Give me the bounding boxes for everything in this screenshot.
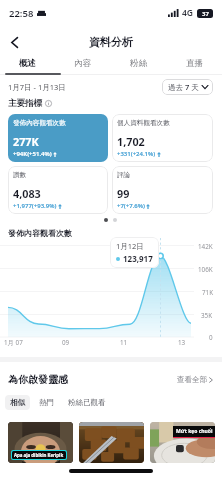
button[interactable] [79,422,144,463]
staticText: 發佈內容觀看次數 [13,119,66,127]
staticText: 35K [201,311,213,320]
staticText: 主要指標 [8,98,42,109]
staticText: +331(+24.1%) [117,150,156,158]
staticText: 1,702 [117,134,145,149]
staticText: 0 [209,333,213,342]
button[interactable]: 內容 [55,55,110,72]
staticText: Mứt kẹo chuối [176,428,213,435]
button[interactable]: 粉絲 [110,55,166,72]
staticText: 99 [117,186,130,201]
staticText: 4G [182,7,194,19]
button[interactable]: 直播 [166,55,222,72]
button[interactable]: 相似 [5,395,30,410]
button[interactable]: 發佈內容觀看次數 [8,114,108,162]
button[interactable]: 查看全部 [177,375,213,384]
staticText: 106K [198,265,213,274]
staticText: 37 [202,10,209,18]
staticText: 查看全部 [177,375,207,384]
staticText: 1月 07 [4,338,23,347]
staticText: 1月7日 - 1月13日 [8,82,66,92]
button[interactable]: 讚數 [8,166,108,214]
button[interactable]: 個人資料觀看次數 [112,114,213,162]
button[interactable]: Apa aja dibikin Keripik [8,422,73,463]
staticText: Apa aja dibikin Keripik [14,452,64,458]
button[interactable]: 粉絲已觀看 [63,395,111,410]
staticText: 評論 [117,171,131,179]
staticText: 粉絲已觀看 [68,398,106,407]
staticText: +94K(+51.4%) [13,150,52,158]
staticText: 讚數 [13,171,27,179]
staticText: 過去 7 天 [168,82,199,92]
button[interactable]: Mứt kẹo chuối [150,422,215,463]
button[interactable]: 評論 [112,166,213,214]
staticText: 09 [62,338,70,347]
staticText: 277K [13,134,39,149]
staticText: 直播 [186,58,203,69]
staticText: +7(+7.6%) [117,202,145,210]
staticText: 1月12日 [116,241,144,251]
staticText: 個人資料觀看次數 [117,119,170,127]
staticText: 123,917 [123,253,153,264]
staticText: 內容 [74,58,91,69]
staticText: 發佈內容觀看次數 [8,228,72,238]
staticText: 粉絲 [130,58,147,69]
staticText: 相似 [10,398,25,407]
staticText: 71K [202,288,214,297]
staticText: 13 [178,338,186,347]
staticText: 資料分析 [89,35,133,49]
staticText: +1,977(+93.9%) [13,202,57,210]
button[interactable]: 熱門 [34,395,59,410]
button[interactable]: Back [2,30,26,54]
staticText: 142K [198,242,213,251]
staticText: 22:58 [9,7,34,20]
button[interactable]: 過去 7 天 [162,79,213,95]
staticText: 4,083 [13,186,41,201]
staticText: 熱門 [39,398,54,407]
staticText: 11 [120,338,128,347]
staticText: 為你啟發靈感 [8,373,68,386]
staticText: 概述 [19,58,36,69]
button[interactable]: 概述 [0,55,55,72]
